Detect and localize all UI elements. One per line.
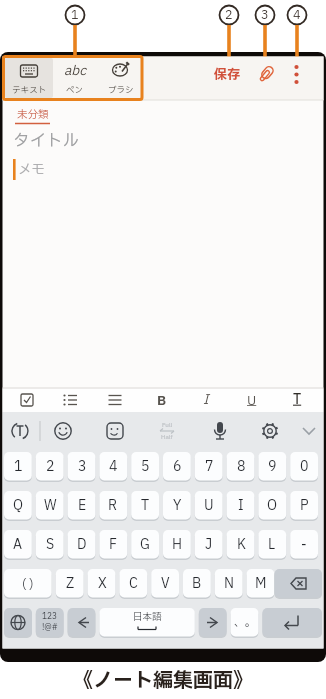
- button[interactable]: 8: [227, 452, 255, 481]
- button[interactable]: I: [227, 491, 255, 520]
- button[interactable]: X: [88, 569, 116, 598]
- staticText: R: [108, 496, 118, 516]
- staticText: X: [98, 574, 107, 594]
- staticText: 4: [109, 457, 118, 477]
- staticText: メモ: [18, 160, 45, 180]
- staticText: Z: [66, 574, 75, 594]
- button[interactable]: Q: [4, 491, 32, 520]
- staticText: S: [46, 535, 55, 555]
- button[interactable]: [36, 608, 64, 637]
- staticText: 3: [261, 6, 269, 24]
- staticText: B: [192, 574, 202, 594]
- button[interactable]: H: [163, 530, 191, 559]
- staticText: 未分類: [17, 107, 49, 123]
- button[interactable]: F: [99, 530, 127, 559]
- button[interactable]: [14, 388, 42, 412]
- button[interactable]: S: [36, 530, 64, 559]
- button[interactable]: 9: [258, 452, 286, 481]
- staticText: !@#: [42, 622, 58, 634]
- button[interactable]: 1: [4, 452, 32, 481]
- button[interactable]: [199, 608, 227, 637]
- button[interactable]: [4, 608, 32, 637]
- button[interactable]: 保存: [197, 61, 257, 87]
- staticText: O: [267, 496, 278, 516]
- staticText: 3: [78, 457, 87, 477]
- button[interactable]: 3: [68, 452, 96, 481]
- button[interactable]: [255, 416, 285, 446]
- staticText: 9: [268, 457, 277, 477]
- staticText: P: [300, 496, 309, 516]
- button[interactable]: 2: [36, 452, 64, 481]
- staticText: W: [44, 496, 57, 516]
- staticText: 8: [237, 457, 246, 477]
- staticText: 、。: [234, 614, 256, 631]
- button[interactable]: [101, 388, 129, 412]
- button[interactable]: [294, 416, 324, 446]
- button[interactable]: 0: [290, 452, 318, 481]
- button[interactable]: N: [215, 569, 243, 598]
- button[interactable]: V: [151, 569, 179, 598]
- button[interactable]: [6, 416, 36, 446]
- staticText: -: [301, 535, 307, 555]
- staticText: F: [109, 535, 117, 555]
- button[interactable]: I: [176, 387, 236, 413]
- button[interactable]: 6: [163, 452, 191, 481]
- staticText: H: [172, 535, 183, 555]
- button[interactable]: 4: [99, 452, 127, 481]
- button[interactable]: K: [227, 530, 255, 559]
- staticText: ブラシ: [108, 84, 134, 97]
- button[interactable]: Z: [56, 569, 84, 598]
- staticText: 123: [42, 611, 58, 623]
- button[interactable]: [68, 608, 96, 637]
- button[interactable]: B: [132, 387, 192, 413]
- button[interactable]: D: [68, 530, 96, 559]
- button[interactable]: [56, 388, 84, 412]
- button[interactable]: [205, 416, 235, 446]
- button[interactable]: [5, 58, 53, 98]
- button[interactable]: O: [258, 491, 286, 520]
- button[interactable]: [53, 58, 97, 98]
- button[interactable]: U: [222, 387, 282, 413]
- staticText: 保存: [214, 65, 241, 84]
- button[interactable]: [274, 569, 322, 598]
- button[interactable]: 7: [195, 452, 223, 481]
- button[interactable]: U: [195, 491, 223, 520]
- button[interactable]: R: [99, 491, 127, 520]
- button[interactable]: [152, 416, 182, 446]
- button[interactable]: P: [290, 491, 318, 520]
- button[interactable]: 日本語: [117, 604, 177, 630]
- button[interactable]: J: [195, 530, 223, 559]
- staticText: Half: [161, 433, 173, 442]
- button[interactable]: [97, 58, 143, 98]
- staticText: C: [129, 574, 138, 594]
- button[interactable]: L: [258, 530, 286, 559]
- button[interactable]: T: [267, 387, 326, 413]
- button[interactable]: -: [290, 530, 318, 559]
- button[interactable]: M: [247, 569, 275, 598]
- button[interactable]: [100, 416, 130, 446]
- staticText: J: [205, 535, 213, 555]
- staticText: 2: [46, 457, 55, 477]
- button[interactable]: [284, 60, 310, 88]
- staticText: L: [268, 535, 276, 555]
- button[interactable]: C: [119, 569, 147, 598]
- staticText: T: [141, 496, 150, 516]
- button[interactable]: ( ): [4, 569, 52, 598]
- button[interactable]: [48, 416, 78, 446]
- button[interactable]: [99, 608, 194, 637]
- button[interactable]: [262, 608, 322, 637]
- button[interactable]: W: [36, 491, 64, 520]
- button[interactable]: [252, 60, 280, 88]
- staticText: I: [238, 496, 244, 516]
- button[interactable]: B: [183, 569, 211, 598]
- button[interactable]: 、。: [228, 609, 262, 635]
- button[interactable]: A: [4, 530, 32, 559]
- button[interactable]: G: [131, 530, 159, 559]
- button[interactable]: E: [68, 491, 96, 520]
- staticText: タイトル: [13, 129, 79, 154]
- staticText: B: [157, 391, 167, 410]
- button[interactable]: Y: [163, 491, 191, 520]
- button[interactable]: 5: [131, 452, 159, 481]
- button[interactable]: T: [131, 491, 159, 520]
- button[interactable]: 未分類: [8, 102, 58, 128]
